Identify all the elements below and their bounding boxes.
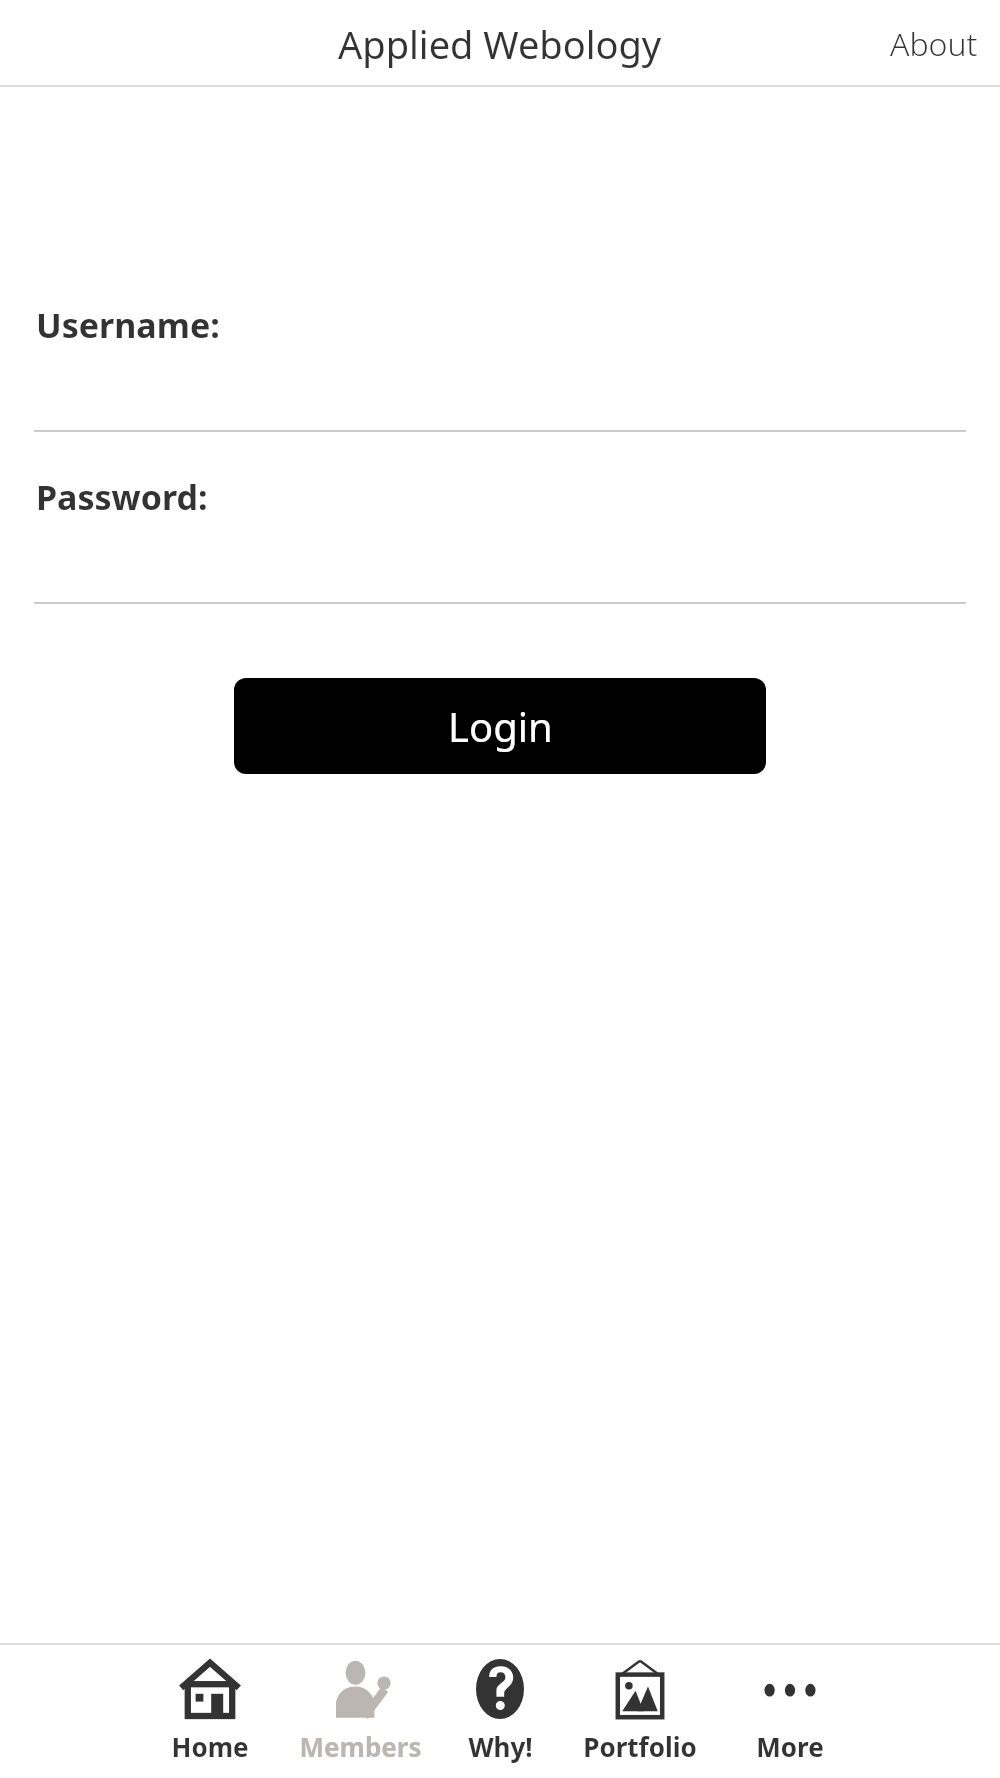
other: Portfolio: [610, 1659, 670, 1719]
staticText: Why!: [468, 1729, 533, 1764]
button[interactable]: Members: [290, 1659, 430, 1764]
staticText: Login: [448, 699, 553, 753]
staticText: Username:: [36, 302, 220, 348]
button[interactable]: Login: [234, 678, 766, 774]
staticText: Portfolio: [583, 1729, 697, 1764]
button[interactable]: More: [710, 1659, 870, 1764]
staticText: Applied Webology: [338, 18, 662, 70]
button[interactable]: Why: [430, 1659, 570, 1764]
button[interactable]: About: [868, 8, 1000, 80]
staticText: Home: [171, 1729, 249, 1764]
other: Why: [470, 1659, 530, 1719]
other: Members: [330, 1659, 390, 1719]
staticText: More: [756, 1729, 824, 1764]
other: More: [760, 1659, 820, 1719]
staticText: Members: [299, 1729, 422, 1764]
other: Home: [180, 1659, 240, 1719]
staticText: Password:: [36, 474, 208, 520]
button[interactable]: Portfolio: [570, 1659, 710, 1764]
button[interactable]: Home: [130, 1659, 290, 1764]
staticText: About: [890, 22, 978, 66]
